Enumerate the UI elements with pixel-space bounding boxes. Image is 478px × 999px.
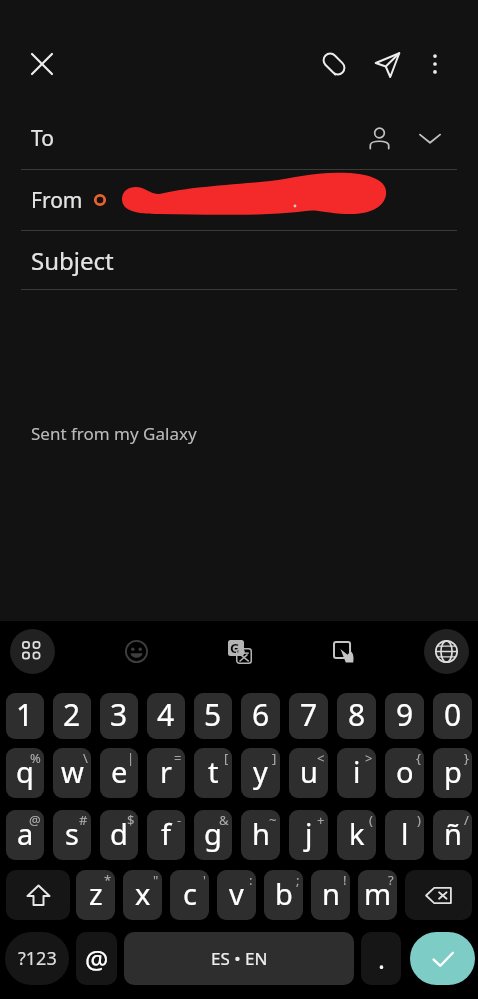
button[interactable]: 6 [241, 693, 280, 739]
button[interactable]: 7 [289, 693, 328, 739]
button[interactable]: Keyboard toolbar [10, 629, 55, 674]
button[interactable]: y [241, 748, 280, 798]
button[interactable]: Emoji [114, 629, 159, 674]
staticText: b [275, 874, 293, 913]
button[interactable]: u [289, 748, 328, 798]
button[interactable]: Done [410, 932, 475, 985]
button[interactable]: p [433, 748, 472, 798]
staticText: " [153, 871, 159, 889]
button[interactable]: j [289, 810, 328, 860]
staticText: 1 [16, 694, 34, 735]
staticText: . [378, 941, 385, 976]
button[interactable]: More options [414, 43, 456, 85]
button[interactable]: Translate [217, 629, 262, 674]
staticText: ñ [444, 814, 462, 853]
button[interactable]: s [53, 810, 91, 860]
button[interactable]: Backspace [405, 870, 472, 920]
staticText: 4 [157, 694, 175, 735]
button[interactable]: r [147, 748, 185, 798]
button[interactable]: a [6, 810, 44, 860]
button[interactable]: q [6, 748, 44, 798]
button[interactable]: Attach file [311, 41, 357, 87]
button[interactable]: ES • EN [124, 932, 354, 985]
staticText: e [111, 752, 128, 791]
button[interactable]: Shift [6, 870, 70, 920]
button[interactable]: 5 [194, 693, 232, 739]
staticText: ; [296, 871, 300, 889]
button[interactable]: i [337, 748, 376, 798]
button[interactable]: n [311, 870, 350, 920]
button[interactable]: 4 [147, 693, 185, 739]
staticText: ( [369, 811, 373, 829]
staticText: 8 [348, 694, 366, 735]
button[interactable]: e [100, 748, 138, 798]
button[interactable]: Handwriting [321, 629, 366, 674]
staticText: { [416, 749, 421, 767]
staticText: ! [343, 871, 347, 889]
button[interactable]: ?123 [5, 932, 69, 985]
button[interactable]: 3 [100, 693, 138, 739]
staticText: = [174, 749, 182, 767]
button[interactable]: x [123, 870, 162, 920]
staticText: t [208, 752, 219, 791]
button[interactable]: c [170, 870, 209, 920]
button[interactable]: g [194, 810, 232, 860]
staticText: m [364, 874, 392, 913]
staticText: a [17, 814, 34, 853]
staticText: ] [272, 749, 277, 767]
button[interactable]: v [217, 870, 256, 920]
button[interactable]: From [0, 170, 478, 230]
staticText: To [31, 124, 54, 153]
button[interactable]: d [100, 810, 138, 860]
button[interactable]: m [358, 870, 397, 920]
staticText: p [444, 752, 462, 791]
staticText: j [305, 814, 313, 853]
staticText: 6 [252, 694, 270, 735]
button[interactable]: Subject [0, 231, 478, 289]
button[interactable]: l [385, 810, 424, 860]
staticText: / [464, 811, 469, 829]
button[interactable]: z [76, 870, 115, 920]
staticText: h [252, 814, 270, 853]
staticText: s [65, 814, 79, 853]
button[interactable]: w [53, 748, 91, 798]
button[interactable]: Close [19, 41, 65, 87]
staticText: @ [29, 811, 41, 829]
staticText: u [300, 752, 318, 791]
staticText: g [204, 814, 222, 853]
button[interactable]: t [194, 748, 232, 798]
staticText: 3 [110, 694, 128, 735]
staticText: d [110, 814, 128, 853]
button[interactable]: To [0, 107, 478, 169]
button[interactable]: . [361, 932, 401, 985]
staticText: o [396, 752, 414, 791]
staticText: y [253, 752, 268, 791]
button[interactable]: 9 [385, 693, 424, 739]
button[interactable]: f [147, 810, 185, 860]
button[interactable]: 2 [53, 693, 91, 739]
staticText: [ [224, 749, 229, 767]
button[interactable]: o [385, 748, 424, 798]
button[interactable]: Show Cc and Bcc [409, 117, 451, 159]
button[interactable]: 1 [6, 693, 44, 739]
staticText: ) [417, 811, 421, 829]
button[interactable]: Change language [424, 629, 469, 674]
staticText: f [161, 814, 171, 853]
button[interactable]: @ [76, 932, 117, 985]
button[interactable]: 0 [433, 693, 472, 739]
button[interactable]: b [264, 870, 303, 920]
staticText: 5 [204, 694, 222, 735]
staticText: c [183, 874, 197, 913]
button[interactable]: h [241, 810, 280, 860]
button[interactable]: ñ [433, 810, 472, 860]
staticText: q [16, 752, 34, 791]
button[interactable]: Send [364, 41, 410, 87]
staticText: l [401, 814, 409, 853]
staticText: 2 [63, 694, 81, 735]
staticText: Sent from my Galaxy [31, 422, 197, 445]
staticText: z [89, 874, 103, 913]
button[interactable]: 8 [337, 693, 376, 739]
staticText: n [322, 874, 340, 913]
button[interactable]: Add from contacts [358, 117, 400, 159]
button[interactable]: k [337, 810, 376, 860]
